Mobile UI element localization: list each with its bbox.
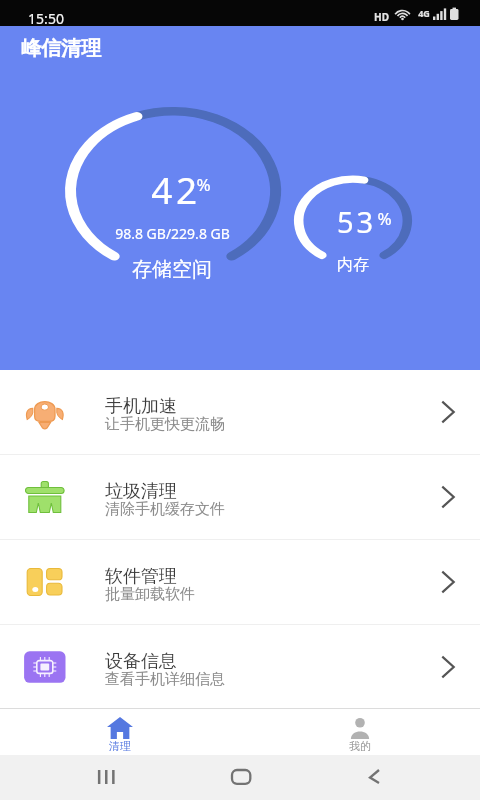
button[interactable]: 设备信息: [0, 625, 480, 708]
staticText: 98.8 GB/229.8 GB: [115, 224, 230, 243]
staticText: 软件管理: [105, 565, 177, 588]
button[interactable]: 我的: [240, 709, 480, 755]
staticText: 设备信息: [105, 650, 177, 673]
staticText: 内存: [337, 255, 369, 275]
staticText: 手机加速: [105, 395, 177, 418]
staticText: 42: [151, 164, 201, 214]
staticText: 峰信清理: [21, 36, 101, 61]
staticText: 我的: [349, 739, 371, 751]
staticText: 批量卸载软件: [105, 585, 195, 604]
staticText: 15:50: [28, 9, 64, 28]
other: 打开: [435, 654, 461, 680]
staticText: 存储空间: [132, 257, 212, 282]
other: 打开: [435, 569, 461, 595]
staticText: 垃圾清理: [105, 480, 177, 503]
staticText: 让手机更快更流畅: [105, 415, 225, 434]
staticText: 清除手机缓存文件: [105, 500, 225, 519]
button[interactable]: 垃圾清理: [0, 455, 480, 539]
staticText: 清理: [109, 739, 131, 751]
staticText: 4G: [418, 7, 430, 19]
button[interactable]: 清理: [0, 709, 240, 755]
staticText: %: [377, 207, 392, 230]
other: 打开: [435, 399, 461, 425]
staticText: 查看手机详细信息: [105, 670, 225, 689]
other: 打开: [435, 484, 461, 510]
staticText: %: [196, 173, 211, 196]
button[interactable]: 手机加速: [0, 370, 480, 454]
staticText: HD: [374, 10, 389, 24]
button[interactable]: 软件管理: [0, 540, 480, 624]
staticText: 53: [337, 202, 376, 241]
